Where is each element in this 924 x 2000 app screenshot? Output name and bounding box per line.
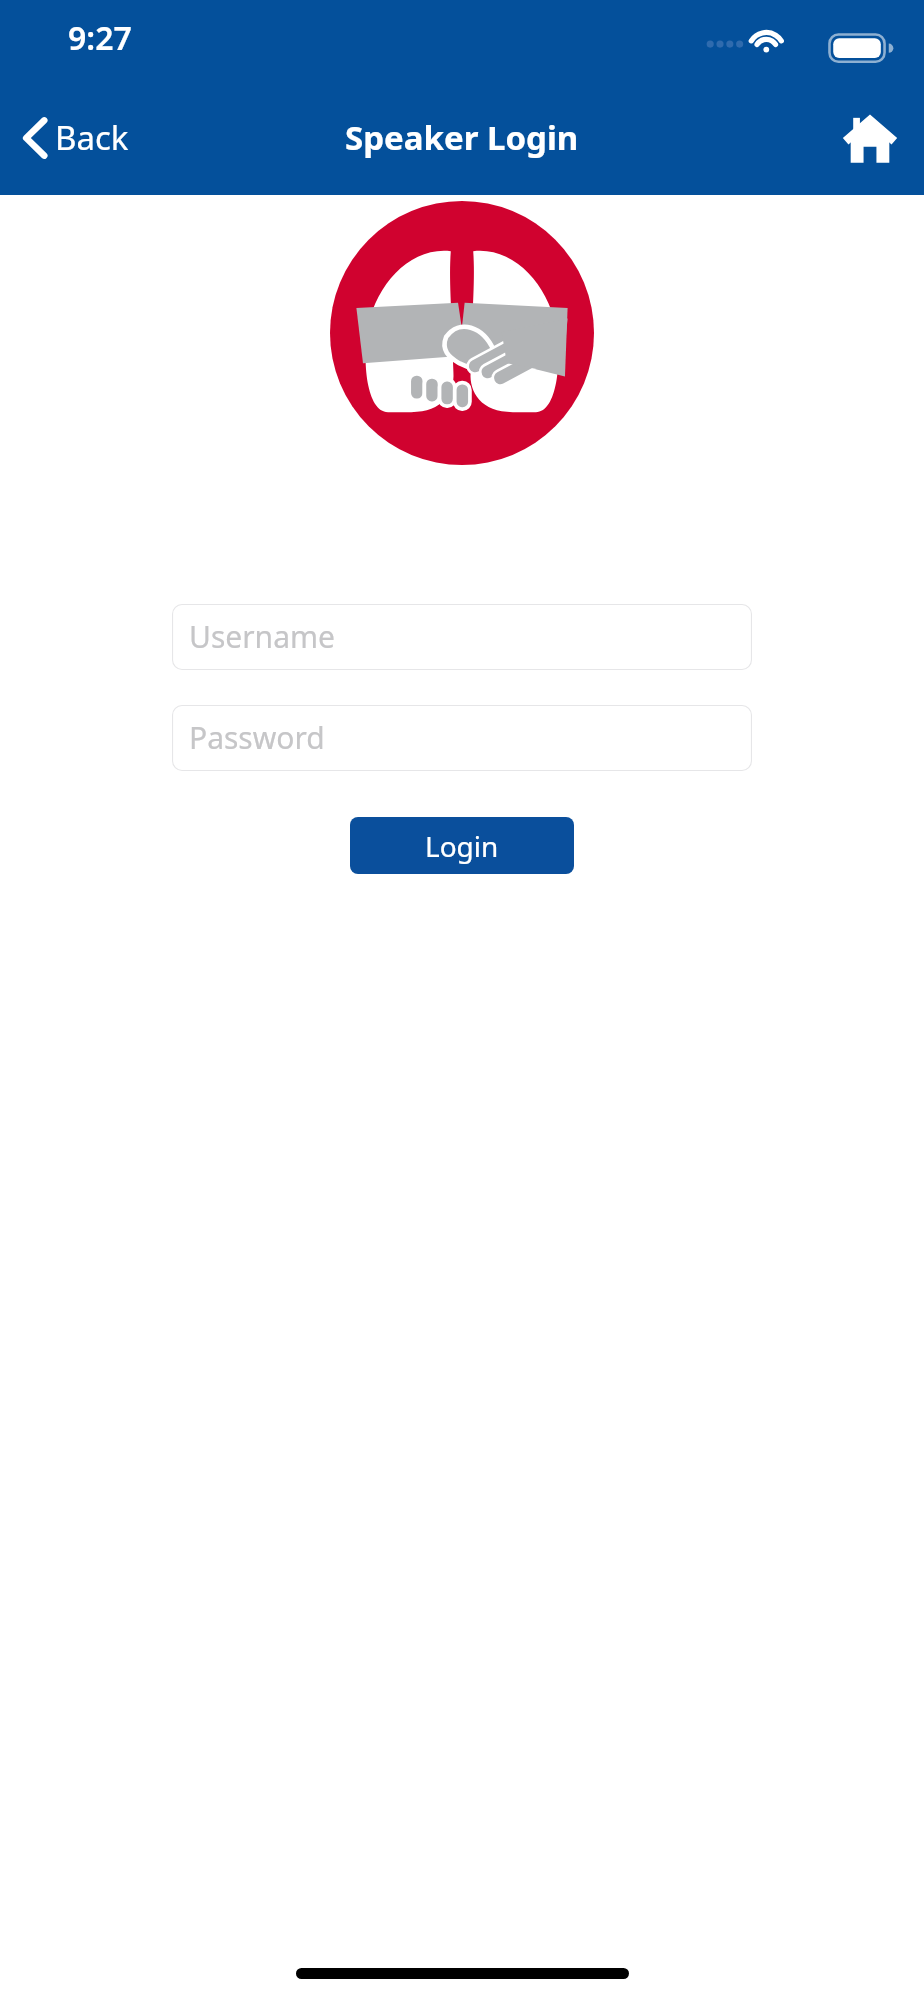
staticText: 9:27: [68, 16, 132, 60]
button[interactable]: Home: [838, 106, 902, 170]
staticText: Username: [189, 616, 335, 657]
staticText: Password: [189, 717, 325, 758]
button[interactable]: Username: [172, 604, 752, 670]
button[interactable]: Password: [172, 705, 752, 771]
staticText: Login: [425, 827, 499, 865]
button[interactable]: Back: [14, 105, 139, 170]
button[interactable]: Login: [350, 817, 574, 874]
staticText: Back: [55, 115, 129, 160]
staticText: Speaker Login: [345, 115, 579, 160]
